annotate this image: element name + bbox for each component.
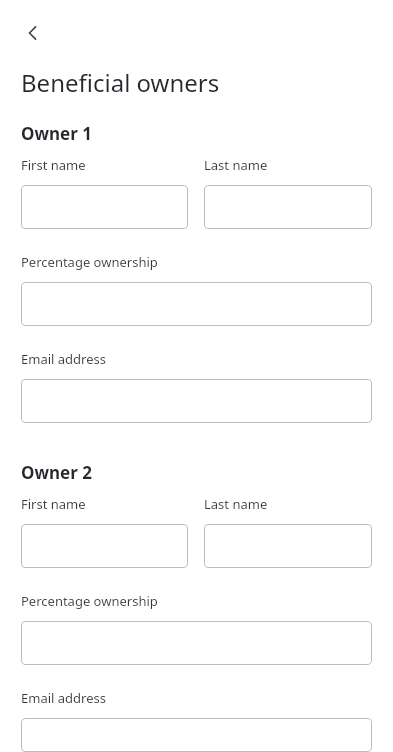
staticText: First name (21, 156, 86, 174)
button[interactable] (204, 185, 372, 229)
button[interactable] (21, 185, 188, 229)
button[interactable] (21, 718, 372, 752)
staticText: Last name (204, 495, 268, 513)
button[interactable] (21, 379, 372, 423)
button[interactable] (21, 524, 188, 568)
staticText: Percentage ownership (21, 592, 158, 610)
staticText: Owner 1 (21, 122, 92, 145)
staticText: Owner 2 (21, 461, 92, 484)
button[interactable]: Back (13, 13, 53, 53)
staticText: Percentage ownership (21, 253, 158, 271)
staticText: Email address (21, 350, 106, 368)
staticText: Last name (204, 156, 268, 174)
button[interactable] (21, 282, 372, 326)
button[interactable] (21, 621, 372, 665)
staticText: First name (21, 495, 86, 513)
staticText: Beneficial owners (21, 66, 220, 99)
staticText: Email address (21, 689, 106, 707)
button[interactable] (204, 524, 372, 568)
